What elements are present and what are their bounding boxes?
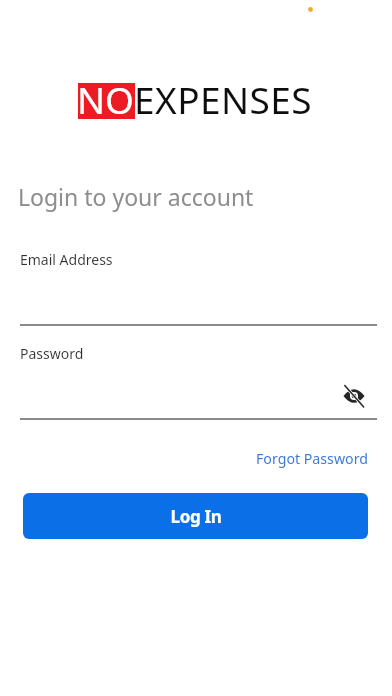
staticText: NO	[77, 74, 135, 124]
staticText: Log In	[170, 505, 222, 528]
staticText: EXPENSES	[134, 74, 313, 124]
staticText: Password	[20, 344, 84, 363]
staticText: Forgot Password	[256, 449, 368, 468]
button[interactable]: Password	[20, 339, 377, 420]
button[interactable]: Email Address	[20, 245, 377, 326]
button[interactable]: Log In	[23, 493, 368, 539]
button[interactable]: Show password	[339, 381, 369, 411]
staticText: Email Address	[20, 250, 113, 269]
staticText: Login to your account	[18, 181, 254, 212]
button[interactable]: Forgot Password	[256, 449, 368, 468]
